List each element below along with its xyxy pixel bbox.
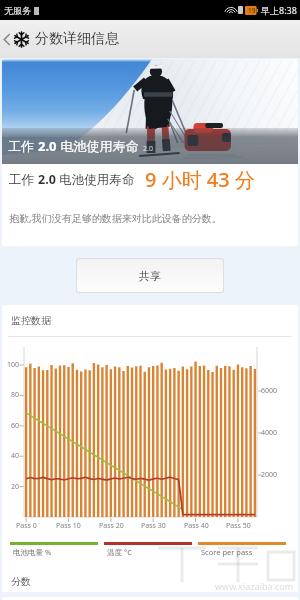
staticText: 电池电量 %: [13, 547, 52, 557]
button[interactable]: 电池电量 %: [10, 542, 98, 557]
button[interactable]: Score per pass: [198, 542, 286, 557]
staticText: 温度 °C: [107, 547, 132, 557]
staticText: www.xiazaiba.com: [215, 580, 294, 592]
staticText: Pass 20: [99, 521, 124, 531]
staticText: 2.0: [143, 144, 153, 154]
button[interactable]: Back: [0, 20, 13, 58]
staticText: 监控数据: [11, 314, 51, 327]
button[interactable]: 共享: [77, 259, 223, 292]
staticText: 9 小时 43 分: [145, 166, 255, 192]
staticText: 2000: [261, 470, 278, 480]
staticText: Pass 40: [184, 521, 209, 531]
staticText: Score per pass: [201, 547, 253, 557]
staticText: 共享: [139, 269, 161, 283]
staticText: 2.0: [38, 171, 56, 188]
staticText: 无服务: [4, 5, 31, 16]
staticText: 20: [11, 482, 20, 492]
staticText: Pass 0: [16, 521, 37, 531]
staticText: 6000: [261, 386, 278, 396]
staticText: 19: [248, 6, 256, 15]
staticText: 抱歉,我们没有足够的数据来对比此设备的分数。: [9, 211, 222, 225]
staticText: Pass 10: [56, 521, 81, 531]
staticText: 工作: [9, 171, 38, 188]
staticText: 分数详细信息: [35, 30, 119, 48]
staticText: Pass 50: [226, 521, 251, 531]
staticText: 100: [7, 360, 20, 370]
staticText: Pass 30: [141, 521, 166, 531]
staticText: 4000: [261, 428, 278, 438]
staticText: 40: [11, 451, 20, 461]
staticText: 80: [11, 390, 20, 400]
staticText: 60: [11, 421, 20, 431]
staticText: 2.0: [38, 137, 57, 155]
button[interactable]: 温度 °C: [104, 542, 192, 557]
staticText: 电池使用寿命: [57, 137, 139, 155]
staticText: 电池使用寿命: [56, 171, 135, 188]
staticText: 工作: [8, 137, 38, 155]
staticText: 早上8:38: [261, 4, 297, 16]
staticText: 分数: [11, 575, 31, 588]
